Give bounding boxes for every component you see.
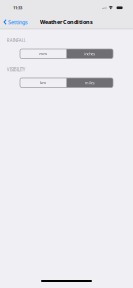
button[interactable]: mm (20, 49, 66, 58)
button[interactable]: Settings (0, 16, 32, 28)
button[interactable]: km (20, 78, 66, 87)
staticText: miles (85, 80, 95, 85)
staticText: mm (39, 51, 47, 56)
staticText: Settings (8, 18, 28, 26)
staticText: inches (84, 51, 95, 56)
staticText: Weather Conditions (40, 18, 93, 26)
button[interactable]: inches (66, 49, 113, 58)
staticText: km (40, 80, 46, 85)
button[interactable]: miles (66, 78, 113, 87)
staticText: RAINFALL (7, 37, 26, 43)
staticText: 11:33 (13, 5, 22, 10)
staticText: VISIBILITY (7, 66, 25, 72)
